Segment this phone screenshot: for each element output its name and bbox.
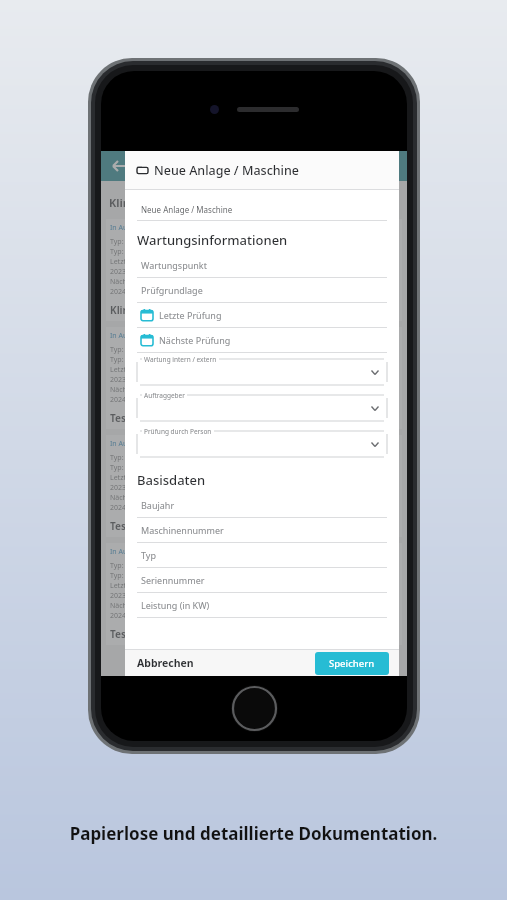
button[interactable]: Prüfung durch Person	[137, 431, 387, 457]
staticText: Letzte Prüfung	[110, 257, 159, 267]
staticText: Nächste Prüfung	[159, 334, 231, 346]
staticText: Maschinennummer	[141, 524, 224, 536]
staticText: Seriennummer	[141, 574, 205, 586]
staticText: Typ: Kompressor	[110, 561, 166, 571]
staticText: In Auftrag	[110, 547, 144, 557]
staticText: Auftraggeber	[144, 391, 185, 400]
staticText: Typ: Anlage 02	[110, 247, 158, 257]
button[interactable]: Wartung intern / extern	[137, 359, 387, 385]
staticText: Wartungspunkt	[141, 259, 207, 271]
button[interactable]: In Auftrag	[106, 543, 402, 645]
staticText: Letzte Prüfung	[110, 473, 159, 483]
other: Back	[111, 159, 125, 173]
staticText: Klimaanlage Halle	[110, 303, 201, 317]
staticText: Nächste Prüfung	[110, 385, 166, 395]
button[interactable]: Baujahr	[137, 493, 387, 518]
staticText: Neue Anlage / Maschine	[141, 204, 233, 215]
staticText: Nächste Prüfung	[110, 277, 166, 287]
staticText: 2023-04-11	[110, 591, 147, 601]
staticText: In Auftrag	[110, 439, 144, 449]
staticText: 2023-04-11	[110, 267, 147, 277]
staticText: Typ: Anlage 02	[110, 355, 158, 365]
button[interactable]: In Auftrag	[106, 219, 402, 321]
button[interactable]: Abbrechen	[135, 654, 196, 672]
button[interactable]: Letzte Prüfung	[137, 303, 387, 328]
staticText: 2024-04-11	[110, 503, 147, 513]
staticText: Wartung intern / extern	[144, 355, 217, 364]
staticText: Leistung (in KW)	[141, 599, 210, 611]
staticText: Typ: Kompressor	[110, 237, 166, 247]
staticText: Typ: Anlage 02	[110, 571, 158, 581]
staticText: Prüfgrundlage	[141, 284, 203, 296]
staticText: Testanlage 2	[110, 519, 173, 533]
button[interactable]: Home	[231, 685, 278, 732]
staticText: Neue Anlage / Maschine	[154, 162, 299, 179]
button[interactable]: In Auftrag	[106, 327, 402, 429]
staticText: Testanlage 3	[110, 627, 173, 641]
button[interactable]: Typ	[137, 543, 387, 568]
staticText: 2024-04-11	[110, 611, 147, 621]
staticText: Testanlage 1	[110, 411, 173, 425]
button[interactable]: Speichern	[315, 652, 389, 675]
staticText: 2024-04-11	[110, 287, 147, 297]
staticText: Wartungsinformationen	[137, 231, 288, 249]
staticText: Typ: Kompressor	[110, 345, 166, 355]
staticText: 2023-04-11	[110, 483, 147, 493]
staticText: Nächste Prüfung	[110, 601, 166, 611]
staticText: Typ: Kompressor	[110, 453, 166, 463]
staticText: In Auftrag	[110, 331, 144, 341]
button[interactable]: Prüfgrundlage	[137, 278, 387, 303]
staticText: Abbrechen	[137, 656, 194, 670]
button[interactable]: Back	[101, 151, 407, 181]
button[interactable]: Wartungspunkt	[137, 253, 387, 278]
button[interactable]: Nächste Prüfung	[137, 328, 387, 353]
staticText: Baujahr	[141, 499, 175, 511]
staticText: Typ: Anlage 02	[110, 463, 158, 473]
staticText: Klimaanlagen	[109, 195, 185, 210]
staticText: Letzte Prüfung	[110, 365, 159, 375]
staticText: Nächste Prüfung	[110, 493, 166, 503]
staticText: 2024-04-11	[110, 395, 147, 405]
button[interactable]: In Auftrag	[106, 435, 402, 537]
staticText: Prüfung durch Person	[144, 427, 212, 436]
staticText: Papierlose und detaillierte Dokumentatio…	[0, 822, 507, 845]
staticText: Letzte Prüfung	[159, 309, 222, 321]
button[interactable]: Seriennummer	[137, 568, 387, 593]
button[interactable]: Leistung (in KW)	[137, 593, 387, 618]
staticText: Basisdaten	[137, 471, 206, 489]
button[interactable]: Maschinennummer	[137, 518, 387, 543]
button[interactable]: Auftraggeber	[137, 395, 387, 421]
staticText: In Auftrag	[110, 223, 144, 233]
staticText: 2023-04-11	[110, 375, 147, 385]
button[interactable]: Neue Anlage / Maschine	[137, 198, 387, 221]
staticText: Letzte Prüfung	[110, 581, 159, 591]
staticText: Typ	[141, 549, 156, 561]
staticText: Speichern	[329, 657, 375, 670]
